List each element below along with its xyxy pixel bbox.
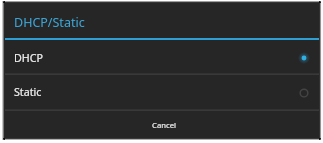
button[interactable]: Static bbox=[5, 74, 319, 109]
button[interactable]: Cancel bbox=[5, 110, 319, 138]
staticText: DHCP bbox=[14, 51, 43, 66]
staticText: DHCP/Static bbox=[14, 14, 85, 31]
button[interactable]: DHCP bbox=[5, 41, 319, 73]
staticText: Static bbox=[14, 85, 42, 100]
staticText: Cancel bbox=[152, 120, 176, 130]
